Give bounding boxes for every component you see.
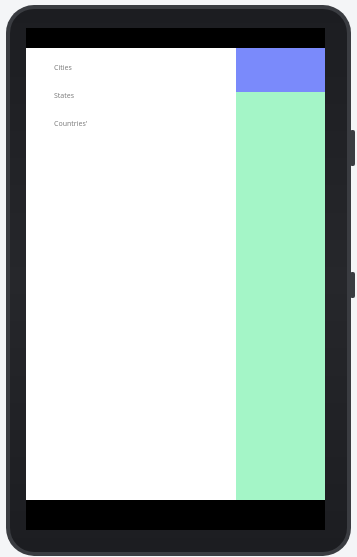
button[interactable]: Cities xyxy=(26,60,226,76)
staticText: States xyxy=(54,91,75,101)
button[interactable]: Countries' xyxy=(26,116,226,132)
button[interactable]: States xyxy=(26,88,226,104)
staticText: Cities xyxy=(54,63,72,73)
staticText: Countries' xyxy=(54,119,88,129)
